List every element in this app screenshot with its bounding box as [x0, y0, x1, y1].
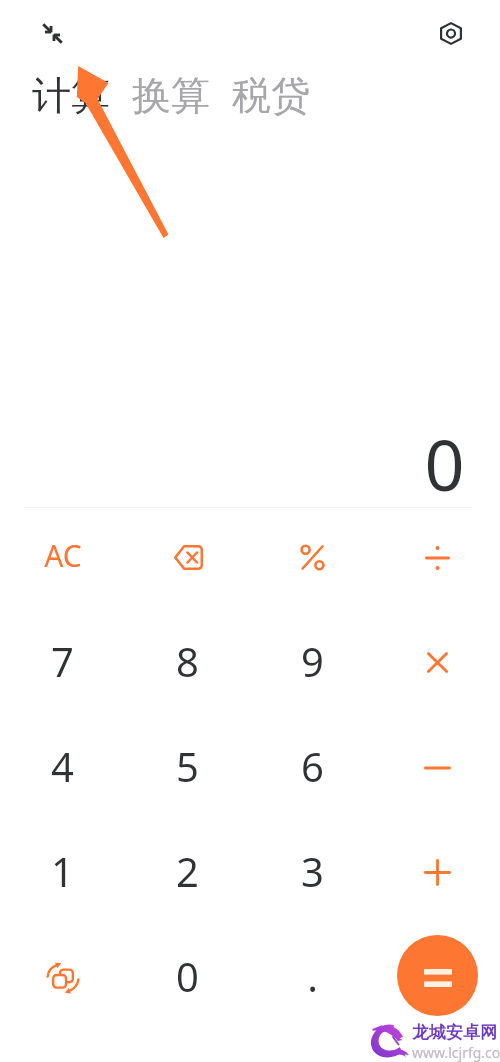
staticText: 8: [176, 634, 199, 688]
button[interactable]: 0: [125, 923, 250, 1028]
staticText: 6: [301, 739, 324, 793]
staticText: 龙城安卓网: [412, 1022, 497, 1043]
button[interactable]: Plus: [375, 818, 500, 923]
button[interactable]: AC: [0, 503, 125, 608]
staticText: 计算: [32, 71, 110, 120]
button[interactable]: 3: [250, 818, 375, 923]
staticText: 0: [176, 949, 199, 1003]
staticText: 9: [301, 634, 324, 688]
button[interactable]: 5: [125, 713, 250, 818]
staticText: 换算: [132, 71, 210, 120]
button[interactable]: Convert: [0, 923, 125, 1028]
button[interactable]: Divide: [375, 503, 500, 608]
button[interactable]: Percent: [250, 503, 375, 608]
staticText: 4: [51, 739, 74, 793]
button[interactable]: Minus: [375, 713, 500, 818]
button[interactable]: 换算: [132, 71, 210, 120]
staticText: www.lcjrfg.com: [412, 1043, 500, 1062]
button[interactable]: Equals: [397, 935, 478, 1016]
staticText: .: [307, 949, 318, 1003]
staticText: 税贷: [232, 71, 310, 120]
button[interactable]: 2: [125, 818, 250, 923]
button[interactable]: Settings: [429, 11, 473, 55]
button[interactable]: Collapse: [30, 11, 74, 55]
staticText: AC: [44, 535, 82, 576]
button[interactable]: 7: [0, 608, 125, 713]
button[interactable]: 计算: [32, 71, 110, 120]
staticText: 7: [51, 634, 74, 688]
button[interactable]: 6: [250, 713, 375, 818]
button[interactable]: 税贷: [232, 71, 310, 120]
staticText: 3: [301, 844, 324, 898]
button[interactable]: 4: [0, 713, 125, 818]
button[interactable]: 8: [125, 608, 250, 713]
button[interactable]: Backspace: [125, 503, 250, 608]
staticText: 1: [51, 844, 74, 898]
button[interactable]: .: [250, 923, 375, 1028]
button[interactable]: Multiply: [375, 608, 500, 713]
staticText: 0: [424, 416, 465, 492]
button[interactable]: 1: [0, 818, 125, 923]
staticText: 2: [176, 844, 199, 898]
staticText: 5: [176, 739, 199, 793]
button[interactable]: 9: [250, 608, 375, 713]
